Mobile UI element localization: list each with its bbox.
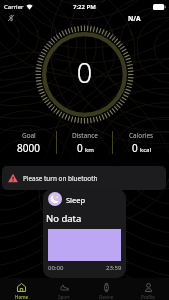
staticText: kcal <box>140 146 151 154</box>
staticText: 0 <box>77 141 83 155</box>
staticText: Home <box>15 294 29 300</box>
staticText: Sport <box>58 294 70 300</box>
staticText: Carrier <box>4 3 24 11</box>
staticText: Please turn on bluetooth <box>23 174 98 183</box>
button[interactable]: Calories <box>113 129 169 156</box>
staticText: Profile <box>141 294 155 300</box>
button[interactable]: Home <box>0 278 43 300</box>
button[interactable]: Sport <box>43 278 85 300</box>
button[interactable]: Please turn on bluetooth <box>2 166 166 190</box>
staticText: 23:59 <box>106 264 122 272</box>
staticText: Device <box>99 294 114 300</box>
staticText: 0 <box>0 54 169 91</box>
staticText: N/A <box>128 14 141 23</box>
staticText: 8000 <box>17 141 40 155</box>
staticText: Distance <box>72 131 98 140</box>
staticText: km <box>85 146 94 154</box>
staticText: 00:00 <box>48 264 64 272</box>
button[interactable]: Goal <box>0 129 57 156</box>
staticText: Sleep <box>66 195 86 205</box>
staticText: 0 <box>132 141 138 155</box>
other: Bluetooth disconnected <box>7 14 15 22</box>
staticText: No data <box>46 212 82 225</box>
staticText: Goal <box>22 131 36 140</box>
button[interactable]: Device <box>85 278 127 300</box>
button[interactable]: Profile <box>127 278 169 300</box>
button[interactable]: Sleep <box>43 189 126 278</box>
button[interactable]: Distance <box>57 129 113 156</box>
staticText: Calories <box>129 131 154 140</box>
staticText: 7:22 PM <box>73 3 96 11</box>
